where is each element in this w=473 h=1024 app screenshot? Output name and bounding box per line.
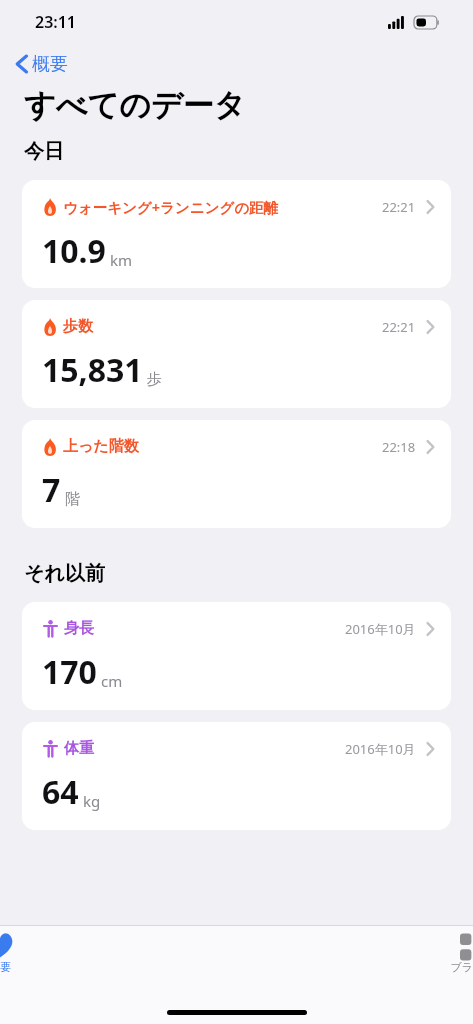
staticText: 歩 — [147, 370, 162, 389]
staticText: 22:21 — [382, 318, 416, 336]
staticText: ブラウズ — [450, 960, 473, 974]
staticText: 体重 — [64, 739, 94, 758]
staticText: 10.9 — [42, 229, 106, 273]
staticText: 2016年10月 — [345, 620, 416, 638]
staticText: すべてのデータ — [24, 86, 246, 125]
staticText: それ以前 — [24, 561, 105, 586]
button[interactable]: 上った階数 — [22, 420, 451, 528]
button[interactable]: ブラウズ — [434, 926, 473, 980]
button[interactable]: 歩数 — [22, 300, 451, 408]
staticText: 身長 — [64, 619, 94, 638]
staticText: 170 — [42, 650, 97, 694]
staticText: 上った階数 — [63, 437, 139, 456]
button[interactable]: 概要 — [0, 926, 31, 980]
staticText: km — [110, 250, 133, 270]
staticText: 2016年10月 — [345, 740, 416, 758]
staticText: cm — [101, 671, 123, 691]
staticText: 歩数 — [63, 317, 93, 336]
staticText: kg — [83, 791, 101, 811]
staticText: 22:21 — [382, 198, 416, 216]
staticText: 今日 — [24, 139, 64, 164]
staticText: ウォーキング+ランニングの距離 — [63, 197, 279, 217]
staticText: 64 — [42, 770, 79, 814]
button[interactable]: 概要 — [12, 48, 70, 80]
staticText: 7 — [42, 468, 61, 512]
button[interactable]: 体重 — [22, 722, 451, 830]
staticText: 階 — [65, 490, 80, 509]
button[interactable]: ウォーキング+ランニングの距離 — [22, 180, 451, 288]
button[interactable]: 身長 — [22, 602, 451, 710]
staticText: 15,831 — [42, 348, 143, 392]
staticText: 23:11 — [35, 11, 77, 33]
staticText: 22:18 — [382, 438, 416, 456]
staticText: 概要 — [32, 53, 68, 76]
staticText: 概要 — [0, 960, 11, 974]
